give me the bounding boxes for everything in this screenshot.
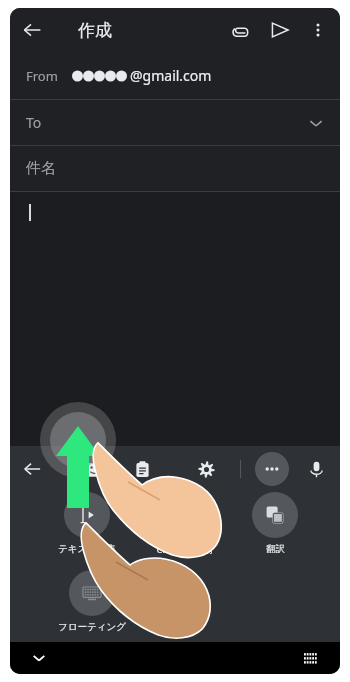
button[interactable]: Floating keyboard bbox=[58, 570, 126, 633]
button[interactable] bbox=[10, 192, 340, 446]
staticText: To bbox=[26, 113, 42, 132]
button[interactable]: Attach file bbox=[220, 10, 260, 50]
staticText: テキスト編集 bbox=[58, 543, 116, 555]
other: Text editing bbox=[64, 492, 110, 538]
button[interactable]: Share to cloud bbox=[156, 492, 214, 556]
button[interactable]: Voice input bbox=[296, 449, 336, 489]
other: Floating keyboard bbox=[69, 570, 115, 616]
button[interactable]: Send bbox=[260, 10, 300, 50]
button[interactable]: Switch keyboard bbox=[298, 645, 324, 671]
button[interactable]: 件名 bbox=[10, 146, 340, 191]
button[interactable]: Hide keyboard bbox=[26, 645, 52, 671]
button[interactable]: Clipboard history bbox=[76, 451, 112, 487]
staticText: From bbox=[26, 67, 58, 85]
other: Translate bbox=[252, 492, 298, 538]
staticText: 件名 bbox=[26, 159, 56, 178]
button[interactable]: More bbox=[255, 452, 289, 486]
button[interactable]: Clipboard bbox=[124, 451, 160, 487]
staticText: Cloud を共有 bbox=[156, 543, 214, 556]
button[interactable]: From bbox=[10, 52, 340, 99]
button[interactable]: To bbox=[10, 100, 340, 145]
button[interactable]: Back bbox=[10, 447, 54, 491]
button[interactable]: Translate bbox=[252, 492, 298, 555]
staticText: 作成 bbox=[78, 20, 112, 41]
staticText: フローティング bbox=[58, 621, 126, 633]
staticText: 翻訳 bbox=[266, 543, 285, 555]
staticText: @gmail.com bbox=[130, 66, 212, 85]
button[interactable]: Text editing bbox=[58, 492, 116, 555]
button[interactable]: Settings bbox=[188, 451, 224, 487]
button[interactable]: Back bbox=[10, 8, 54, 52]
button[interactable]: More options bbox=[300, 12, 336, 48]
